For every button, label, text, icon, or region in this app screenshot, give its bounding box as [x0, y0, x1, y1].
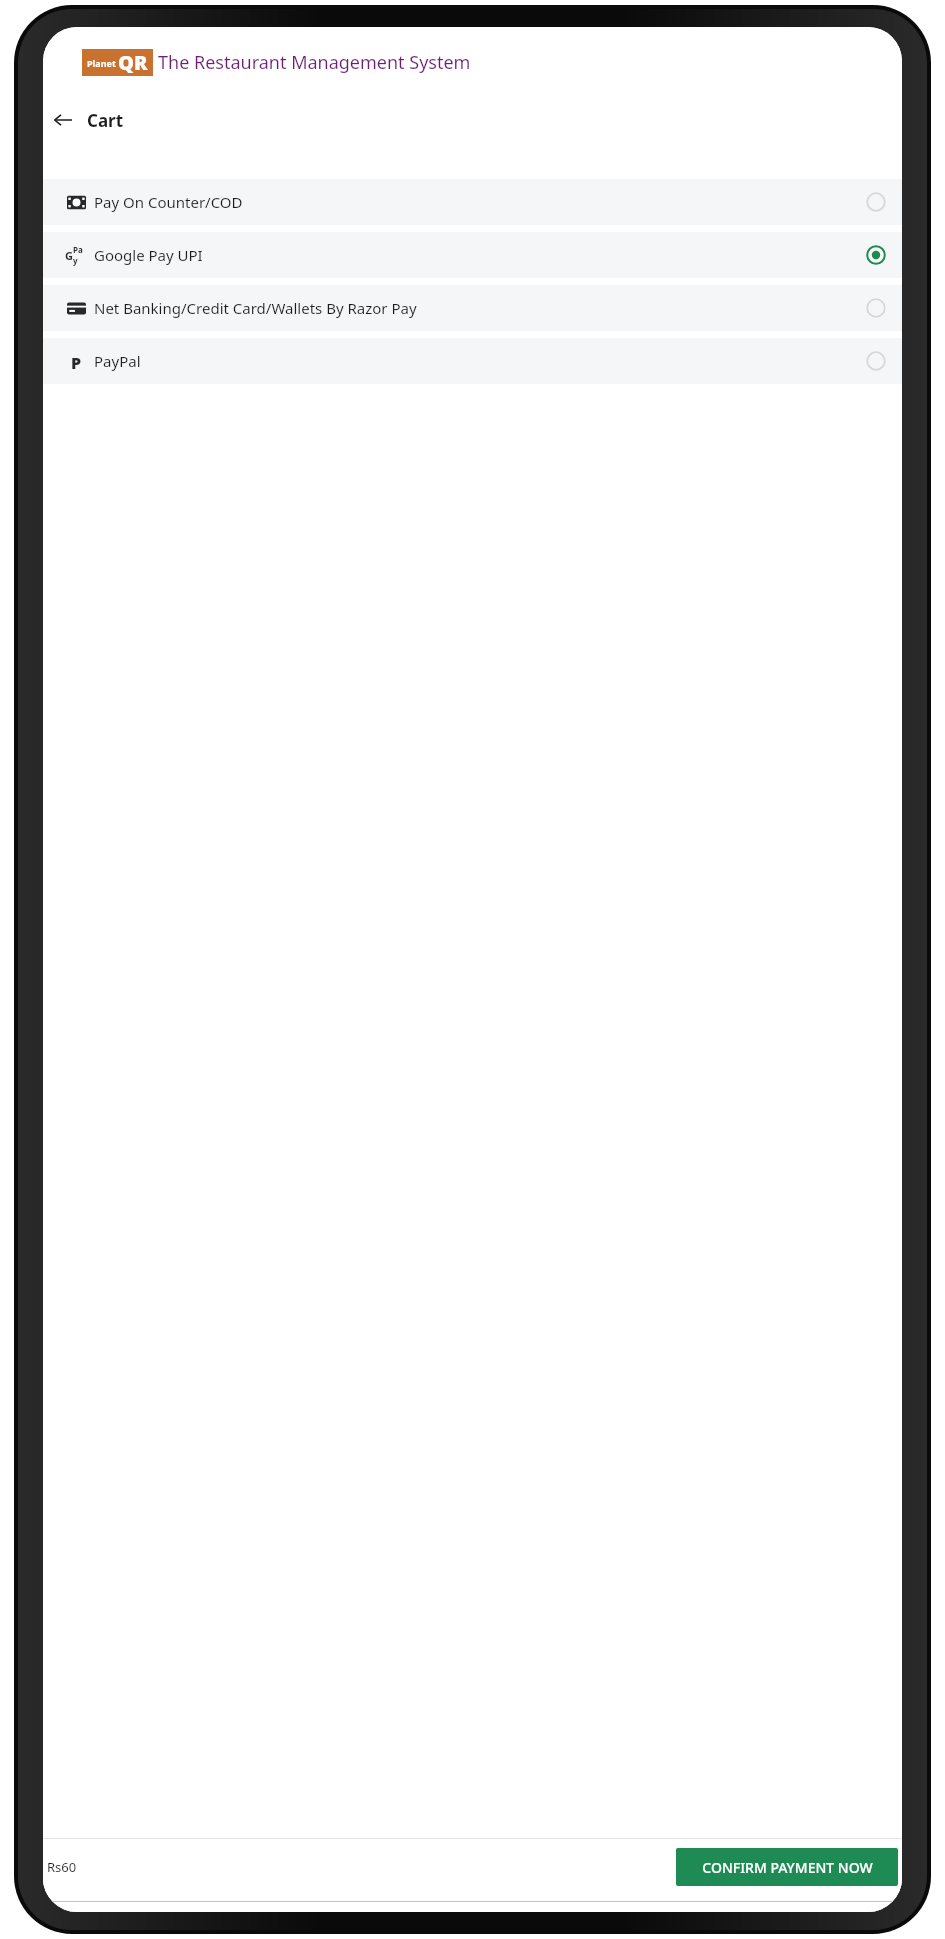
staticText: Cart [87, 109, 124, 132]
staticText: PayPal [94, 351, 141, 371]
button[interactable]: Pay On Counter/COD [43, 179, 902, 225]
button[interactable]: Back [43, 100, 83, 140]
staticText: Rs60 [47, 1858, 77, 1876]
staticText: G [65, 248, 73, 263]
staticText: Google Pay UPI [94, 245, 203, 265]
staticText: Pay [73, 244, 87, 266]
staticText: CONFIRM PAYMENT NOW [702, 1858, 873, 1877]
staticText: P [71, 352, 82, 371]
button[interactable]: Net Banking/Credit Card/Wallets By Razor… [43, 285, 902, 331]
button[interactable]: P [43, 338, 902, 384]
staticText: QR [118, 49, 148, 76]
staticText: The Restaurant Management System [158, 50, 471, 75]
staticText: Planet [87, 57, 116, 69]
button[interactable]: G [43, 232, 902, 278]
staticText: Net Banking/Credit Card/Wallets By Razor… [94, 298, 417, 318]
staticText: Pay On Counter/COD [94, 192, 243, 212]
button[interactable]: CONFIRM PAYMENT NOW [676, 1848, 898, 1886]
